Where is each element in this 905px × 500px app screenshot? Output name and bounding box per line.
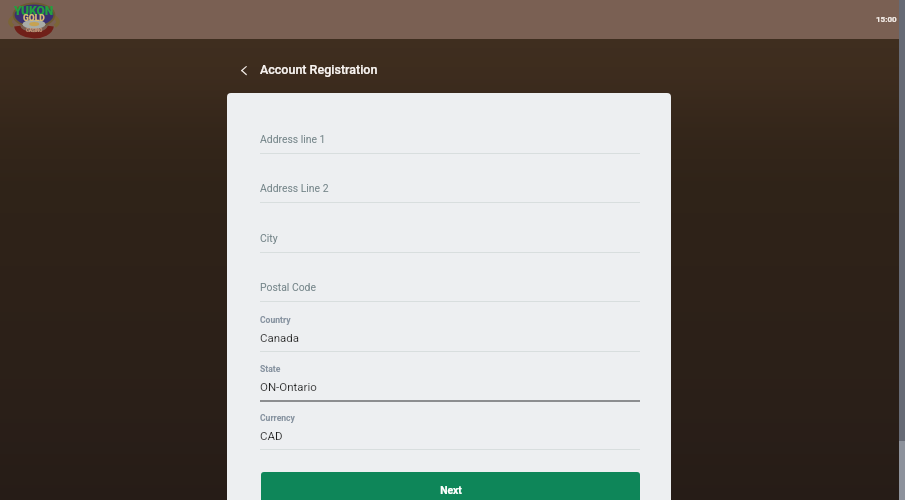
- button[interactable]: Address line 1: [260, 119, 640, 154]
- staticText: Address line 1: [260, 133, 326, 145]
- staticText: Next: [440, 484, 462, 496]
- button[interactable]: Address Line 2: [260, 168, 640, 203]
- button[interactable]: State: [260, 357, 640, 401]
- staticText: City: [260, 232, 278, 244]
- staticText: State: [260, 364, 281, 374]
- button[interactable]: Currency: [260, 406, 640, 450]
- button[interactable]: Back: [237, 56, 378, 83]
- staticText: GOLD: [23, 13, 45, 23]
- button[interactable]: Next: [261, 472, 640, 500]
- staticText: CASINO: [26, 28, 43, 33]
- staticText: CAD: [260, 429, 283, 442]
- staticText: Address Line 2: [260, 182, 329, 194]
- staticText: 15:00: [876, 15, 897, 24]
- other: Back: [237, 63, 251, 77]
- staticText: Country: [260, 315, 291, 325]
- button[interactable]: Country: [260, 308, 640, 352]
- button[interactable]: Postal Code: [260, 267, 640, 302]
- button[interactable]: City: [260, 218, 640, 253]
- staticText: Postal Code: [260, 281, 316, 293]
- button[interactable]: Yukon Gold Casino home: [10, 2, 58, 36]
- staticText: ON-Ontario: [260, 380, 317, 393]
- staticText: Canada: [260, 331, 300, 344]
- staticText: YUKON: [14, 4, 54, 18]
- staticText: Currency: [260, 413, 295, 423]
- staticText: Account Registration: [260, 62, 378, 77]
